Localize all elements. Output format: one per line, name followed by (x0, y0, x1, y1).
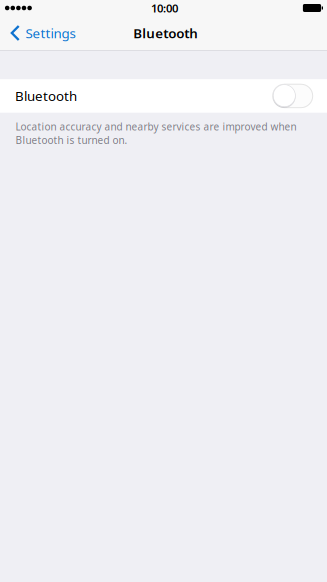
button[interactable]: Bluetooth, off (272, 84, 313, 108)
staticText: Location accuracy and nearby services ar… (15, 120, 296, 147)
staticText: 10:00 (151, 0, 178, 16)
staticText: Settings (26, 24, 76, 42)
staticText: Bluetooth (15, 87, 77, 105)
staticText: Bluetooth (133, 24, 198, 42)
button[interactable]: Settings (0, 16, 84, 50)
